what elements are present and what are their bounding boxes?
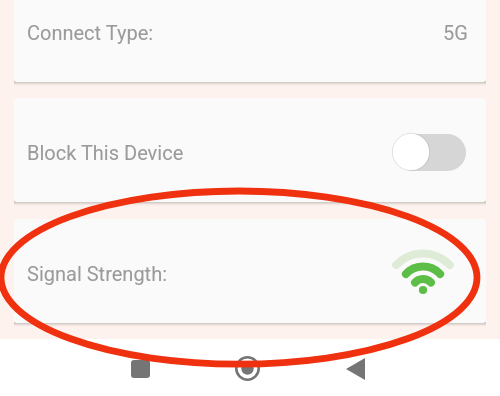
button[interactable]: Block This Device bbox=[14, 98, 486, 202]
button[interactable]: Home bbox=[235, 356, 260, 381]
other: Signal strength bbox=[392, 247, 454, 293]
button[interactable]: Connect Type: bbox=[14, 0, 486, 82]
staticText: Signal Strength: bbox=[27, 262, 168, 285]
staticText: Connect Type: bbox=[27, 21, 154, 44]
button[interactable] bbox=[391, 132, 466, 172]
staticText: 5G bbox=[443, 21, 468, 44]
staticText: Block This Device bbox=[27, 141, 184, 164]
button[interactable]: Recent apps bbox=[131, 360, 150, 378]
button[interactable]: Back bbox=[346, 358, 365, 380]
button[interactable]: Signal Strength: bbox=[14, 219, 486, 323]
